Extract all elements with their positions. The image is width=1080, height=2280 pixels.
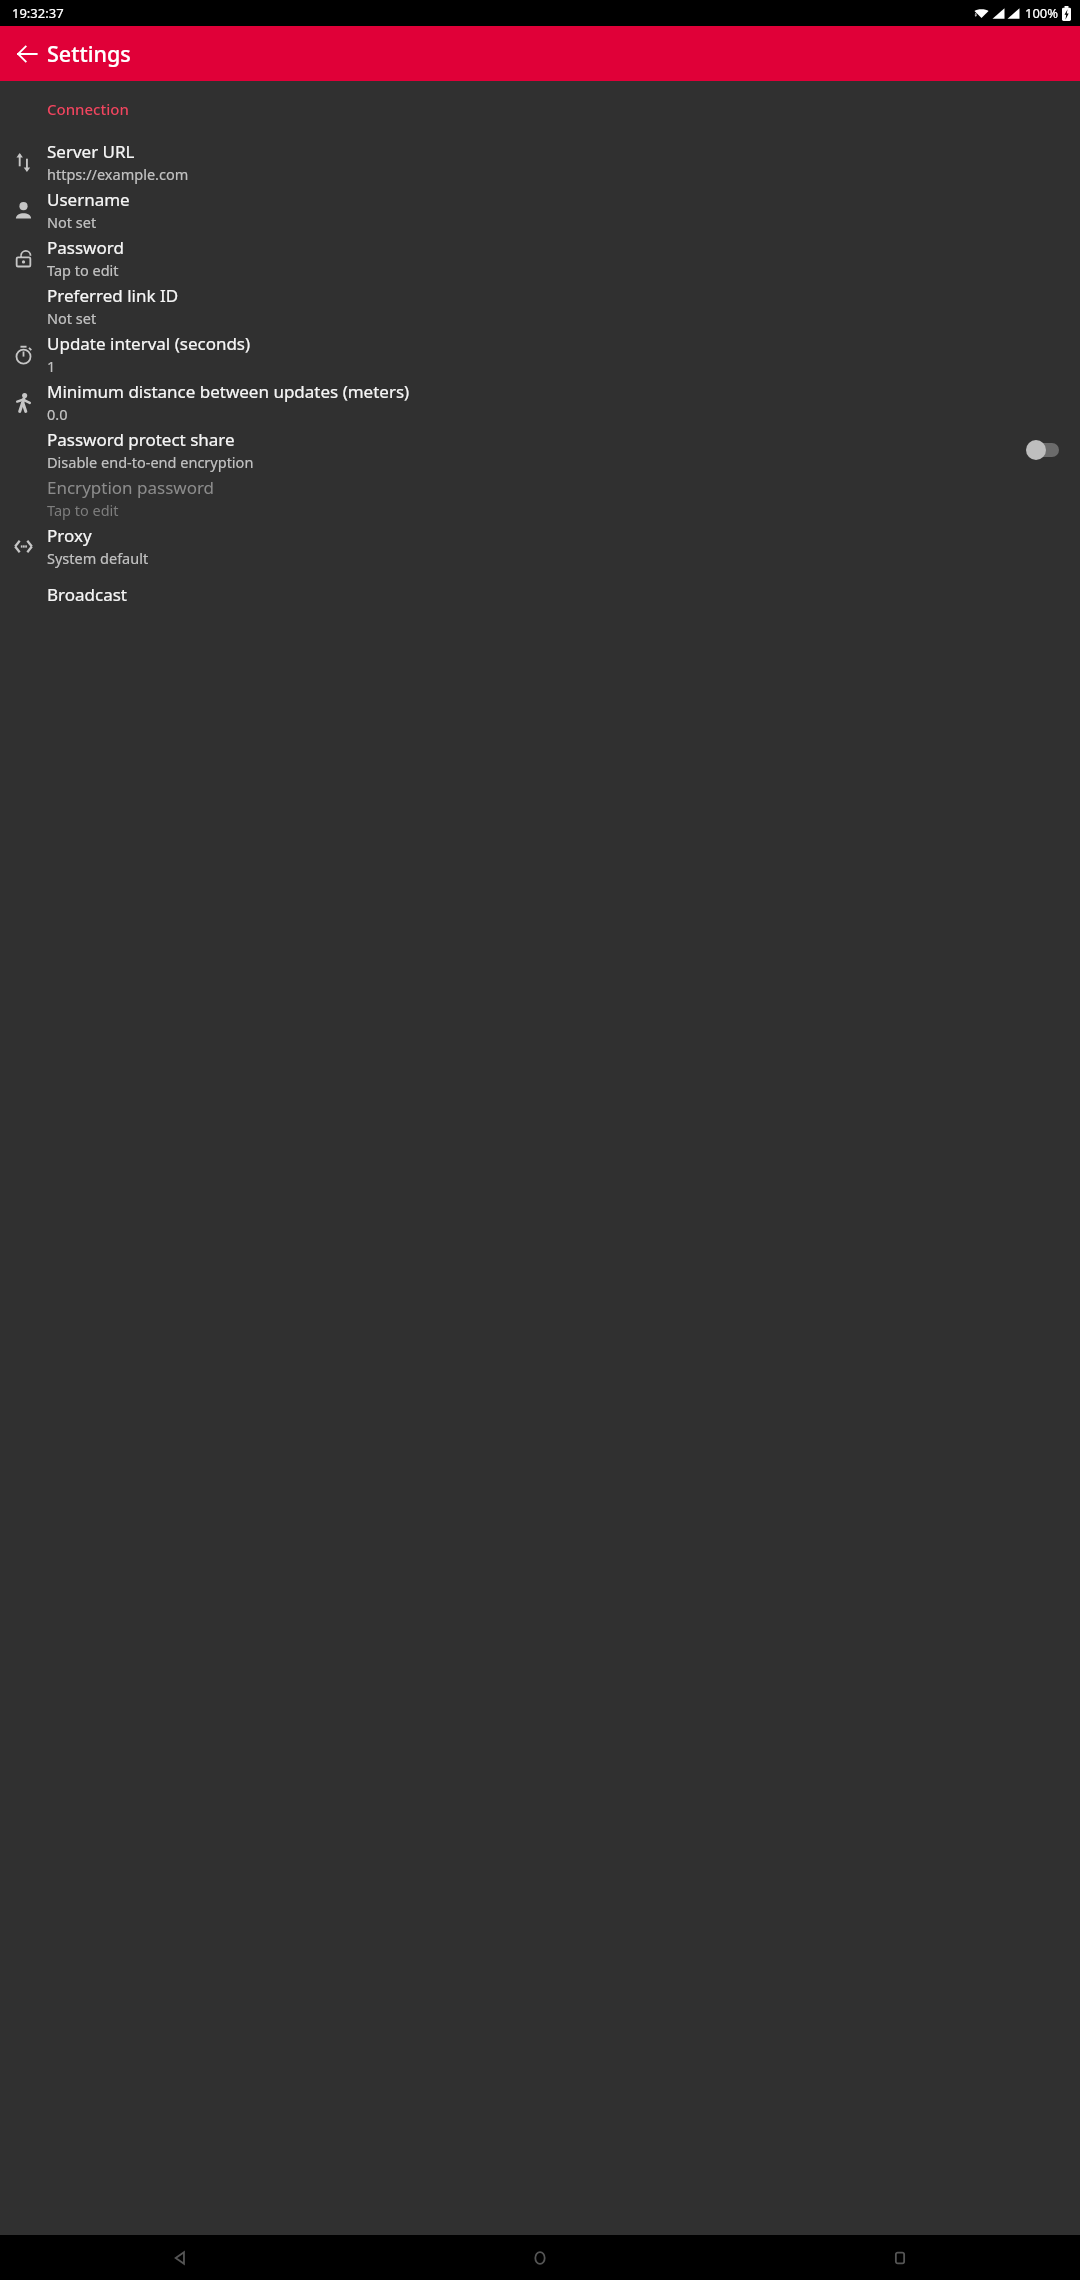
button[interactable]: Encryption password xyxy=(0,474,1080,522)
staticText: Not set xyxy=(47,212,97,232)
staticText: Password xyxy=(47,236,124,259)
staticText: 0.0 xyxy=(47,404,68,424)
button[interactable]: Broadcast xyxy=(0,570,1080,618)
button[interactable]: Preferred link ID xyxy=(0,282,1080,330)
staticText: Settings xyxy=(47,39,131,68)
staticText: Tap to edit xyxy=(47,500,119,520)
button[interactable]: Back xyxy=(0,2235,360,2280)
staticText: System default xyxy=(47,548,149,568)
button[interactable]: Proxy xyxy=(0,522,1080,570)
staticText: 1 xyxy=(47,356,56,376)
staticText: Proxy xyxy=(47,524,92,547)
button[interactable]: Update interval (seconds) xyxy=(0,330,1080,378)
staticText: Server URL xyxy=(47,140,135,163)
staticText: Broadcast xyxy=(47,583,127,606)
staticText: Disable end-to-end encryption xyxy=(47,452,254,472)
staticText: Minimum distance between updates (meters… xyxy=(47,380,410,403)
staticText: Connection xyxy=(47,99,129,119)
staticText: Username xyxy=(47,188,130,211)
staticText: Tap to edit xyxy=(47,260,119,280)
staticText: Preferred link ID xyxy=(47,284,179,307)
staticText: https://example.com xyxy=(47,164,189,184)
staticText: 100% xyxy=(1025,4,1059,22)
staticText: Password protect share xyxy=(47,428,235,451)
button[interactable]: Username xyxy=(0,186,1080,234)
button[interactable]: Minimum distance between updates (meters… xyxy=(0,378,1080,426)
button[interactable]: Server URL xyxy=(0,138,1080,186)
button[interactable]: Password xyxy=(0,234,1080,282)
button[interactable]: Home xyxy=(360,2235,720,2280)
button[interactable]: Recent apps xyxy=(720,2235,1080,2280)
staticText: Update interval (seconds) xyxy=(47,332,251,355)
staticText: 19:32:37 xyxy=(12,4,64,22)
button[interactable]: Password protect share toggle xyxy=(1026,435,1062,465)
button[interactable]: Navigate up xyxy=(7,34,46,73)
staticText: Not set xyxy=(47,308,97,328)
staticText: Encryption password xyxy=(47,476,215,499)
button[interactable]: Password protect share xyxy=(0,426,1080,474)
